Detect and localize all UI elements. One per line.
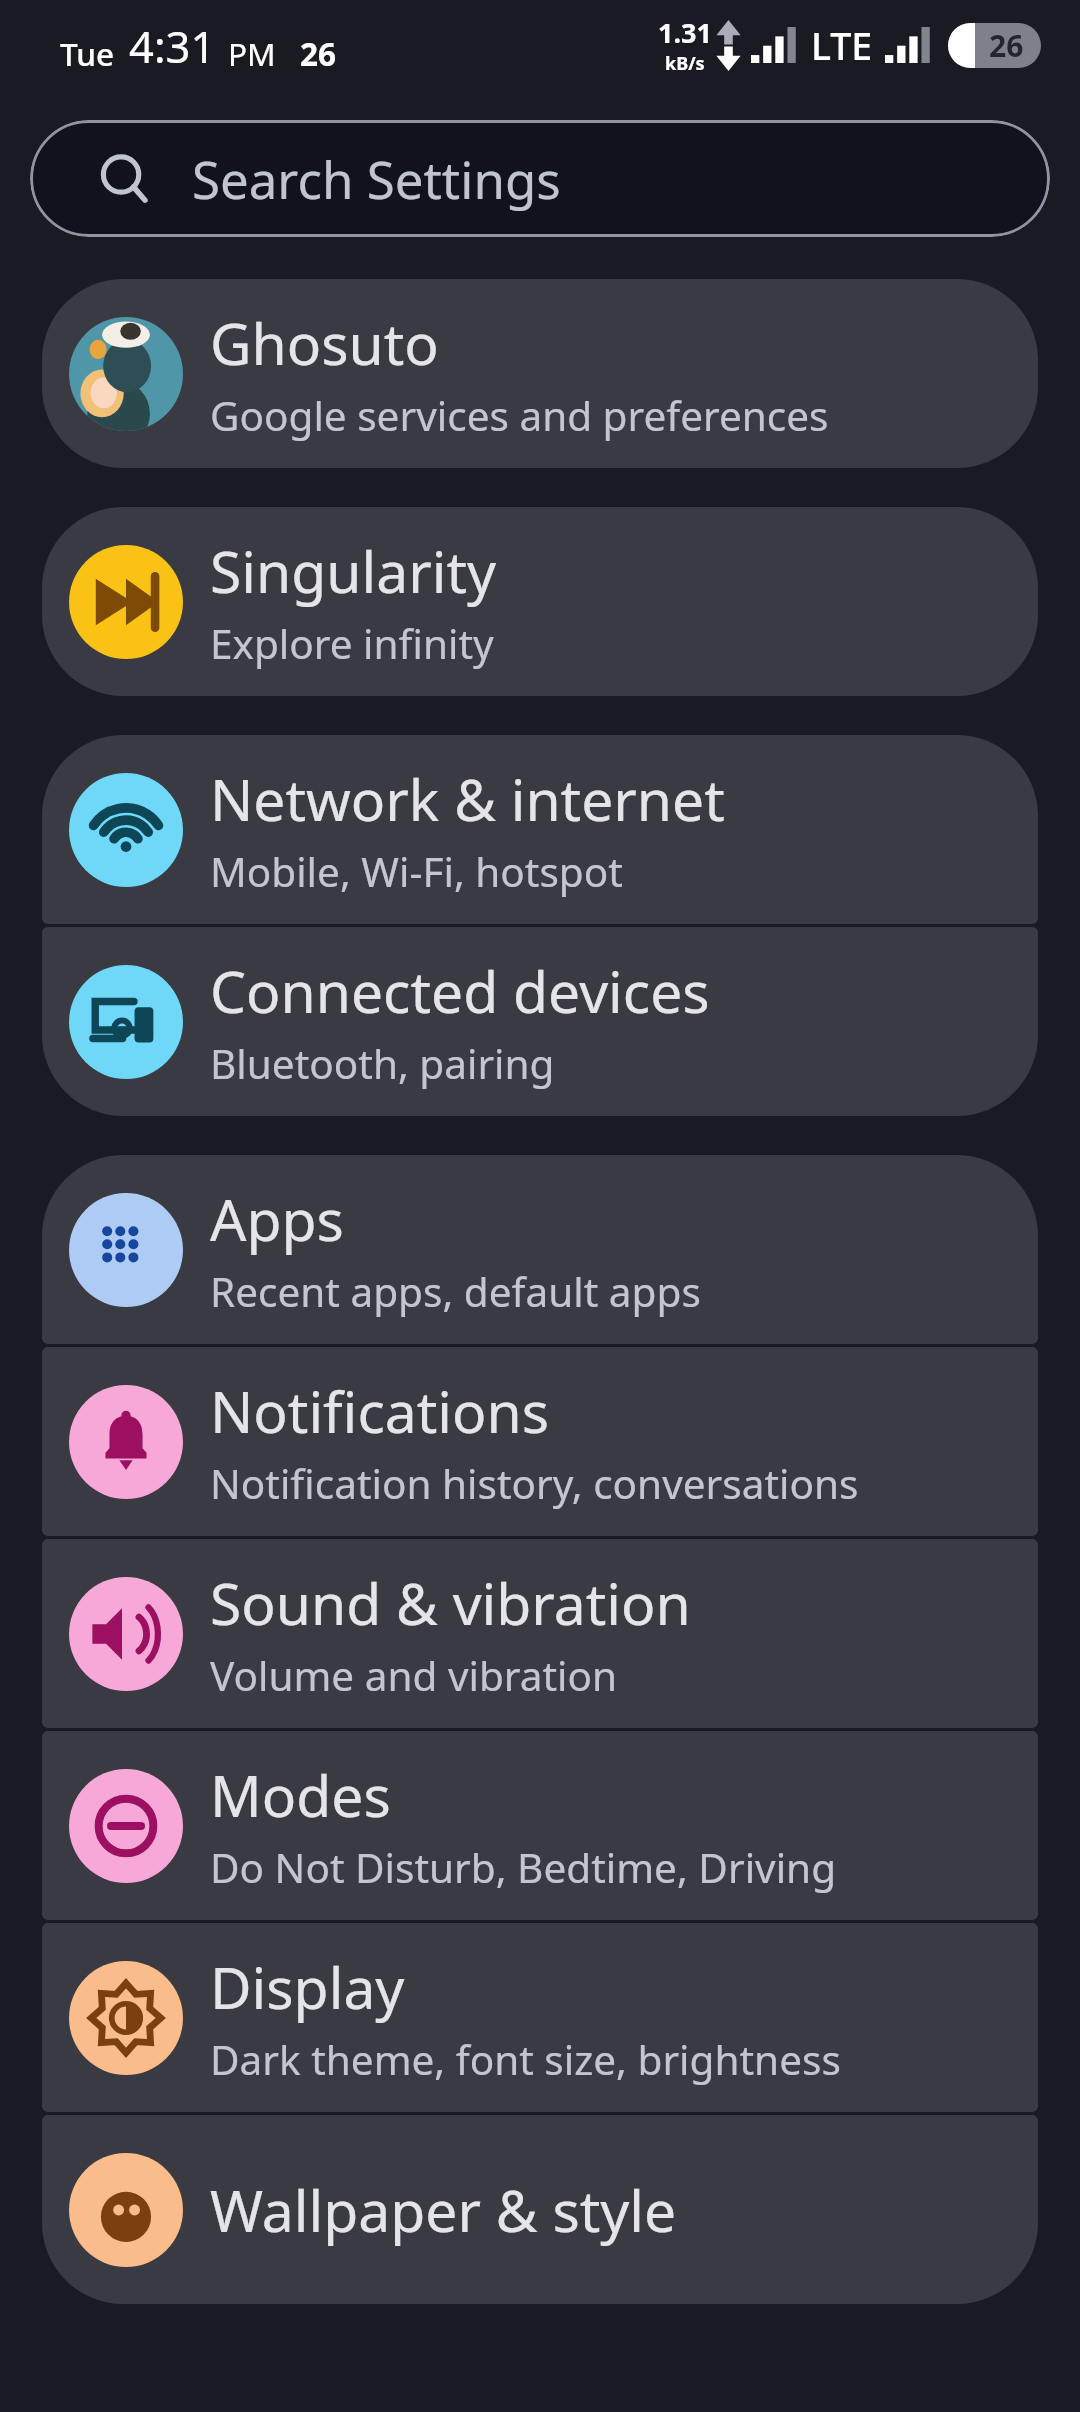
button[interactable]: Wallpaper	[42, 2115, 1038, 2304]
other: Display	[69, 1961, 183, 2075]
button[interactable]: Account avatar	[42, 279, 1038, 468]
button[interactable]: Sound	[42, 1539, 1038, 1728]
staticText: PM	[228, 32, 276, 75]
button[interactable]: Apps	[42, 1155, 1038, 1344]
staticText: 26	[989, 25, 1024, 66]
staticText: Ghosuto	[210, 304, 439, 382]
button[interactable]: Network	[42, 735, 1038, 924]
staticText: Network & internet	[210, 760, 725, 838]
button[interactable]: Search Settings	[30, 120, 1050, 237]
staticText: LTE	[811, 20, 873, 71]
other: Wallpaper	[69, 2153, 183, 2267]
staticText: Notifications	[210, 1372, 550, 1450]
staticText: kB/s	[665, 51, 705, 76]
staticText: Notification history, conversations	[210, 1456, 859, 1511]
staticText: 1.31	[658, 14, 712, 51]
staticText: Explore infinity	[210, 616, 494, 671]
other: Notifications	[69, 1385, 183, 1499]
staticText: Google services and preferences	[210, 388, 829, 443]
staticText: Search Settings	[192, 144, 561, 213]
button[interactable]: Display	[42, 1923, 1038, 2112]
staticText: Recent apps, default apps	[210, 1264, 701, 1319]
staticText: Sound & vibration	[210, 1564, 691, 1642]
staticText: Singularity	[210, 532, 497, 610]
other: Sound	[69, 1577, 183, 1691]
staticText: Wallpaper & style	[210, 2171, 677, 2249]
other: Modes	[69, 1769, 183, 1883]
staticText: Display	[210, 1948, 405, 2026]
button[interactable]: Modes	[42, 1731, 1038, 1920]
staticText: Modes	[210, 1756, 391, 1834]
staticText: Tue	[60, 32, 114, 75]
button[interactable]: Singularity	[42, 507, 1038, 696]
other: Apps	[69, 1193, 183, 1307]
staticText: 26	[300, 32, 337, 75]
button[interactable]: Connected devices	[42, 927, 1038, 1116]
staticText: Bluetooth, pairing	[210, 1036, 555, 1091]
staticText: Mobile, Wi-Fi, hotspot	[210, 844, 623, 899]
other: Network	[69, 773, 183, 887]
button[interactable]: Notifications	[42, 1347, 1038, 1536]
staticText: Apps	[210, 1180, 344, 1258]
other: Connected devices	[69, 965, 183, 1079]
staticText: Volume and vibration	[210, 1648, 618, 1703]
staticText: Connected devices	[210, 952, 710, 1030]
staticText: Do Not Disturb, Bedtime, Driving	[210, 1840, 837, 1895]
staticText: 4:31	[129, 16, 216, 75]
other: Account avatar	[69, 317, 183, 431]
staticText: Dark theme, font size, brightness	[210, 2032, 841, 2087]
other: Singularity	[69, 545, 183, 659]
